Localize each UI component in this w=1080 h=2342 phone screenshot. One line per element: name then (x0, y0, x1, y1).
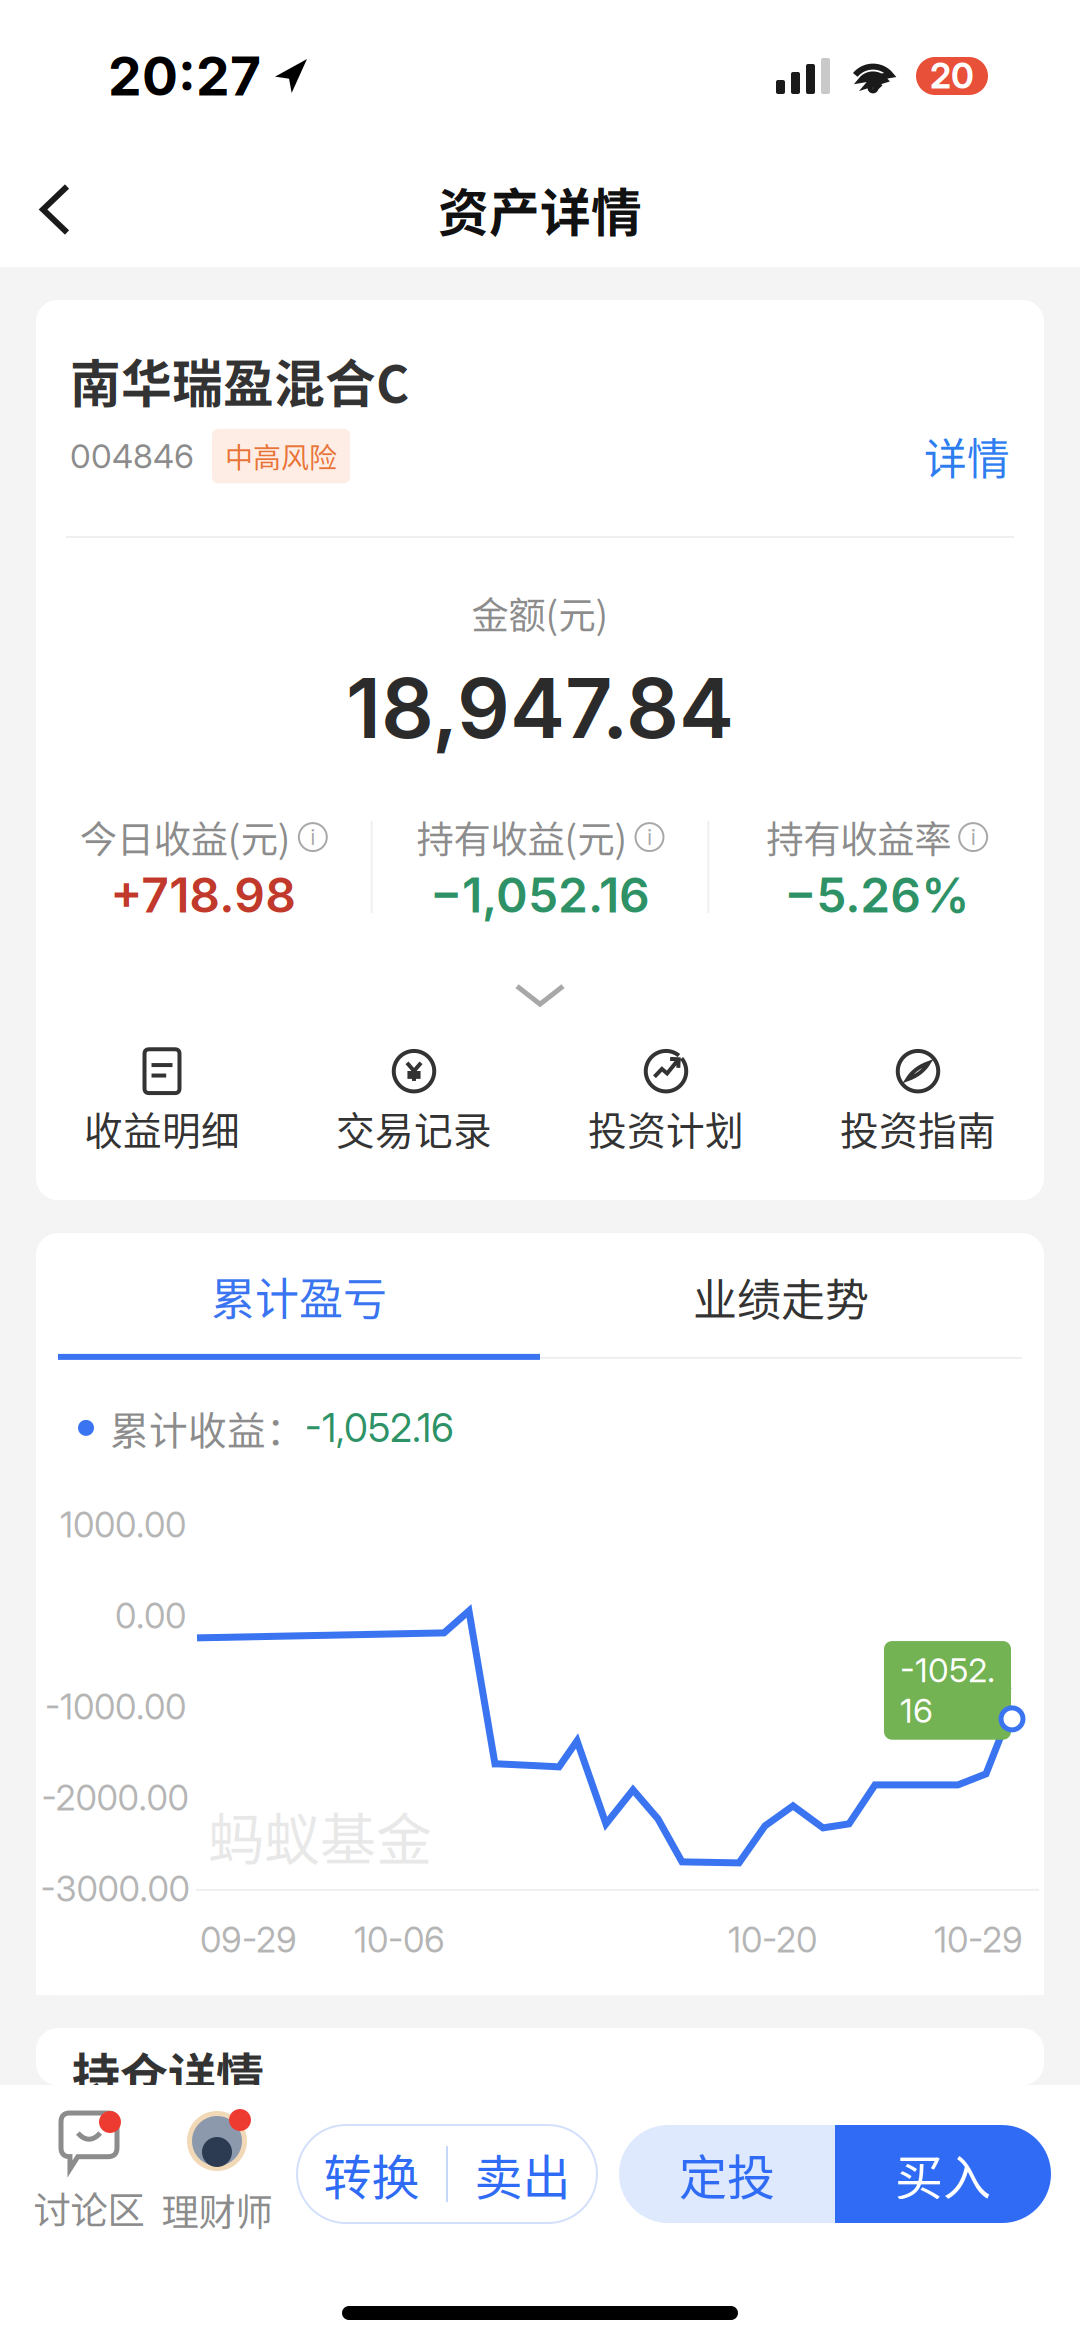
staticText: -3000.00 (40, 1868, 189, 1910)
staticText: 卖出 (474, 2139, 570, 2209)
staticText: −5.26% (784, 866, 969, 924)
button[interactable]: 转换 (297, 2125, 446, 2223)
staticText: −1,052.16 (430, 866, 650, 924)
button[interactable]: 定投 (619, 2125, 835, 2223)
staticText: 交易记录 (336, 1100, 492, 1156)
button[interactable]: Expand (480, 964, 600, 1026)
staticText: 持有收益(元) (416, 810, 627, 864)
staticText: 20 (930, 55, 974, 97)
staticText: 0.00 (115, 1595, 186, 1637)
staticText: 蚂蚁基金 (208, 1795, 432, 1876)
staticText: 10-29 (934, 1919, 1023, 1961)
staticText: -1052.16 (900, 1650, 995, 1731)
staticText: 金额(元) (471, 586, 608, 640)
staticText: -1,052.16 (305, 1404, 454, 1451)
staticText: i (971, 824, 976, 850)
staticText: 09-29 (200, 1919, 297, 1961)
staticText: 详情 (924, 425, 1010, 487)
staticText: 投资计划 (588, 1100, 744, 1156)
staticText: 18,947.84 (346, 658, 734, 758)
staticText: 004846 (70, 436, 194, 476)
staticText: 1000.00 (60, 1504, 186, 1546)
staticText: 累计盈亏 (211, 1264, 387, 1328)
button[interactable]: 理财师 (153, 2111, 281, 2237)
button[interactable]: 投资指南 (792, 1048, 1044, 1156)
staticText: 买入 (895, 2139, 991, 2209)
staticText: -1000.00 (45, 1686, 186, 1728)
button[interactable]: 交易记录 (288, 1048, 540, 1156)
staticText: i (310, 824, 315, 850)
staticText: 中高风险 (225, 436, 337, 476)
staticText: 累计收益： (110, 1400, 305, 1456)
staticText: 10-06 (354, 1919, 445, 1961)
staticText: 持仓详情 (72, 2038, 264, 2107)
button[interactable]: 讨论区 (25, 2113, 153, 2235)
staticText: i (647, 824, 652, 850)
button[interactable]: 投资计划 (540, 1048, 792, 1156)
staticText: +718.98 (110, 866, 296, 924)
button[interactable]: 累计盈亏 (58, 1233, 540, 1360)
button[interactable]: 收益明细 (36, 1048, 288, 1156)
staticText: 持有收益率 (766, 810, 951, 864)
staticText: -2000.00 (41, 1777, 188, 1819)
staticText: 转换 (323, 2139, 419, 2209)
staticText: 讨论区 (33, 2181, 144, 2235)
staticText: 资产详情 (438, 173, 642, 246)
staticText: 今日收益(元) (80, 810, 291, 864)
staticText: 10-20 (728, 1919, 817, 1961)
button[interactable]: 业绩走势 (540, 1234, 1022, 1359)
staticText: 业绩走势 (693, 1265, 869, 1329)
button[interactable]: 详情 (924, 425, 1010, 487)
staticText: 南华瑞盈混合C (70, 344, 409, 417)
staticText: 理财师 (161, 2183, 272, 2237)
staticText: 投资指南 (840, 1100, 996, 1156)
staticText: 收益明细 (84, 1100, 240, 1156)
button[interactable]: 卖出 (448, 2125, 597, 2223)
button[interactable]: 买入 (835, 2125, 1051, 2223)
staticText: 定投 (679, 2139, 775, 2209)
button[interactable]: Back (0, 159, 110, 259)
staticText: 20:27 (108, 44, 261, 108)
